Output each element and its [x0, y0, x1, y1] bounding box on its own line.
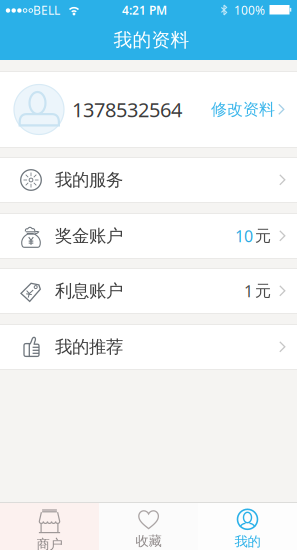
staticText: 我的资料 [113, 28, 189, 51]
button[interactable]: 我的推荐 [0, 324, 297, 370]
staticText: 商户 [36, 536, 62, 550]
button[interactable]: 奖金账户 [0, 213, 297, 259]
staticText: 我的推荐 [55, 336, 123, 358]
staticText: 10 [235, 225, 253, 247]
staticText: 奖金账户 [55, 225, 123, 247]
staticText: 我的 [234, 533, 260, 550]
button[interactable]: 收藏 [99, 503, 198, 550]
button[interactable]: 1378532564 [0, 71, 297, 148]
button[interactable]: 我的服务 [0, 157, 297, 203]
staticText: 4:21 PM [122, 2, 167, 18]
staticText: 1 [244, 280, 253, 302]
staticText: 收藏 [135, 533, 161, 549]
staticText: 修改资料 [211, 100, 275, 119]
staticText: 100% [234, 2, 265, 18]
button[interactable]: 我的 [198, 503, 297, 550]
staticText: 1378532564 [72, 96, 182, 123]
staticText: 利息账户 [55, 280, 123, 302]
staticText: 元 [255, 281, 271, 301]
staticText: 我的服务 [55, 169, 123, 191]
button[interactable]: 商户 [0, 503, 99, 550]
staticText: BELL [33, 2, 60, 18]
button[interactable]: 利息账户 [0, 268, 297, 314]
staticText: 元 [255, 226, 271, 246]
